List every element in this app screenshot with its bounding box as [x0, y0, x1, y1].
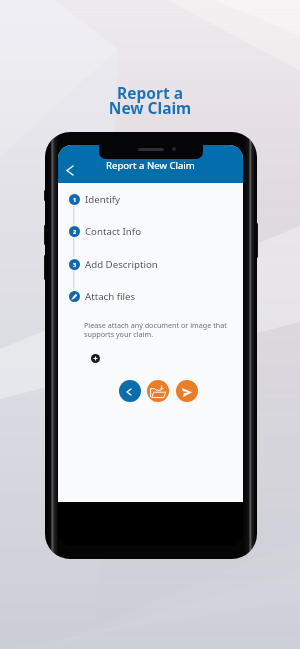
staticText: 1 — [73, 196, 77, 203]
staticText: Report a New Claim — [106, 159, 195, 172]
button[interactable]: 2 — [69, 222, 148, 240]
staticText: 2 — [73, 228, 77, 235]
button[interactable]: Send — [176, 380, 198, 402]
button[interactable]: Back — [119, 380, 141, 402]
staticText: Contact Info — [85, 225, 142, 238]
staticText: 3 — [73, 261, 77, 268]
button[interactable]: Attach file — [147, 380, 169, 402]
staticText: Attach files — [85, 290, 136, 303]
button[interactable]: Add attachment — [91, 354, 100, 363]
staticText: Add Description — [85, 258, 158, 271]
button[interactable]: Back — [62, 161, 78, 179]
button[interactable]: 3 — [69, 255, 164, 273]
staticText: Please attach any document or image that… — [84, 320, 227, 339]
staticText: Identify — [85, 193, 120, 206]
button[interactable]: Attach files — [69, 287, 142, 305]
staticText: Report a New Claim — [0, 82, 300, 119]
button[interactable]: 1 — [69, 190, 126, 208]
